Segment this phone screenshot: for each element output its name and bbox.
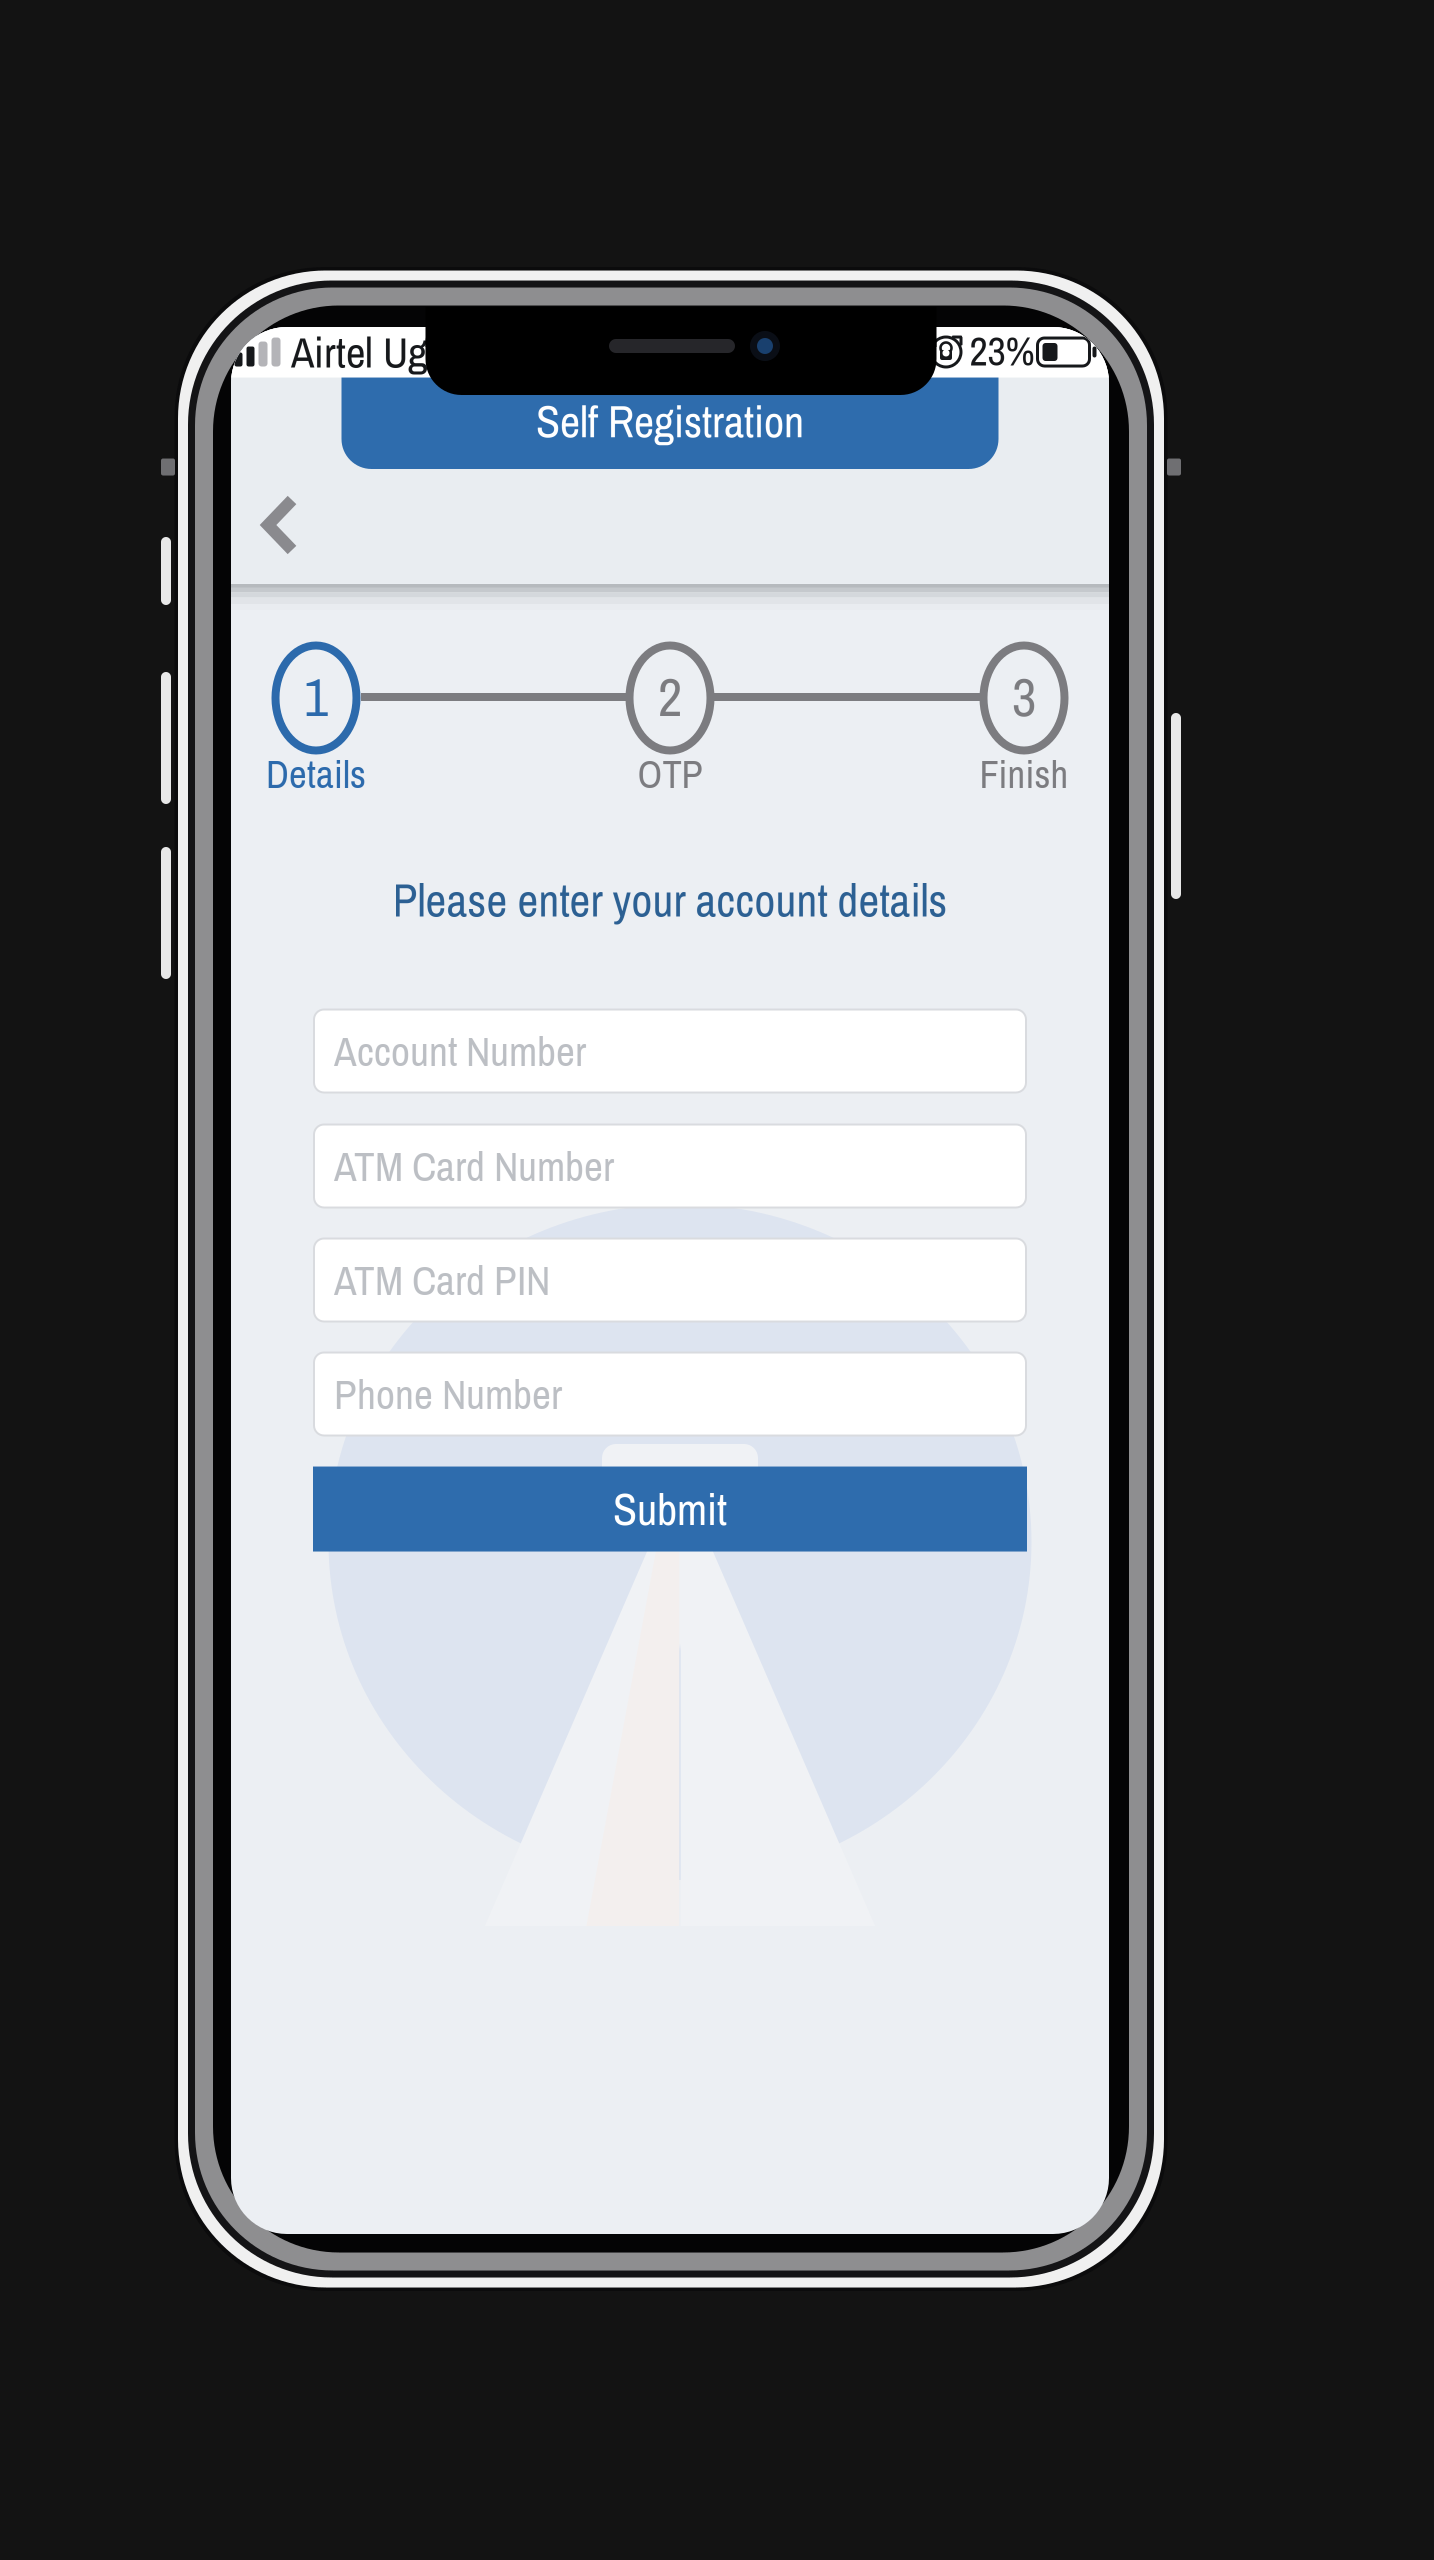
button[interactable]: ATM Card PIN bbox=[314, 1238, 1026, 1321]
staticText: 2 bbox=[658, 661, 682, 733]
staticText: 1 bbox=[304, 661, 328, 733]
staticText: Please enter your account details bbox=[392, 869, 947, 931]
button[interactable]: Phone Number bbox=[314, 1352, 1026, 1435]
staticText: 3 bbox=[1012, 661, 1036, 733]
staticText: Airtel Ugan bbox=[291, 323, 465, 381]
staticText: Finish bbox=[979, 748, 1068, 800]
button[interactable]: Account Number bbox=[314, 1009, 1026, 1092]
staticText: Submit bbox=[613, 1479, 727, 1539]
staticText: 23% bbox=[969, 324, 1034, 378]
button[interactable]: Submit bbox=[313, 1466, 1027, 1551]
staticText: OTP bbox=[637, 748, 702, 800]
staticText: Details bbox=[266, 748, 366, 800]
staticText: Account Number bbox=[334, 1023, 586, 1079]
staticText: ATM Card PIN bbox=[334, 1252, 550, 1308]
button[interactable]: Back bbox=[220, 465, 340, 585]
staticText: Phone Number bbox=[334, 1366, 562, 1422]
staticText: Self Registration bbox=[536, 392, 804, 451]
button[interactable]: ATM Card Number bbox=[314, 1124, 1026, 1207]
staticText: ATM Card Number bbox=[334, 1138, 614, 1194]
